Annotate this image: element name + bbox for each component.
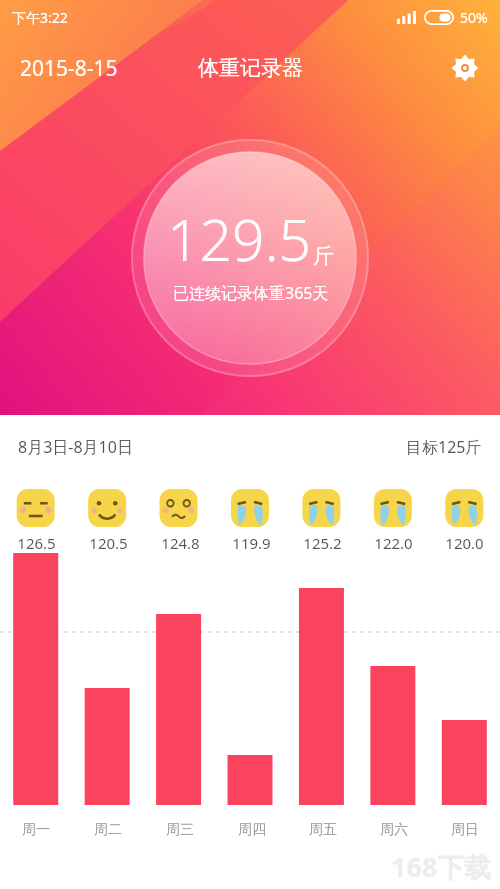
staticText: 120.5 — [89, 533, 128, 553]
staticText: 120.0 — [445, 533, 484, 553]
staticText: 8月3日-8月10日 — [18, 436, 133, 458]
staticText: 168下载 — [391, 848, 492, 885]
staticText: 体重记录器 — [198, 55, 303, 81]
button[interactable]: Settings — [444, 47, 486, 89]
staticText: 周六 — [380, 821, 408, 839]
staticText: 下午3:22 — [12, 8, 68, 27]
staticText: 122.0 — [374, 533, 413, 553]
staticText: 周日 — [451, 821, 479, 839]
staticText: 周四 — [238, 821, 266, 839]
staticText: 已连续记录体重365天 — [173, 282, 329, 304]
staticText: 周五 — [309, 821, 337, 839]
staticText: 129.5 — [167, 200, 312, 278]
staticText: 周一 — [22, 821, 50, 839]
staticText: 周三 — [166, 821, 194, 839]
staticText: 124.8 — [161, 533, 200, 553]
staticText: 周二 — [94, 821, 122, 839]
staticText: 目标125斤 — [406, 436, 482, 458]
staticText: 50% — [460, 8, 488, 27]
button[interactable]: 129.5 — [131, 139, 369, 377]
staticText: 126.5 — [17, 533, 56, 553]
button[interactable]: 2015-8-15 — [20, 54, 118, 83]
staticText: 119.9 — [232, 533, 271, 553]
staticText: 斤 — [313, 243, 334, 269]
staticText: 125.2 — [303, 533, 342, 553]
